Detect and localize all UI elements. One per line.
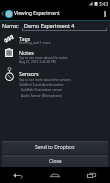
button[interactable]: More options xyxy=(99,7,110,20)
staticText: Viewing Experiment xyxy=(14,10,60,17)
staticText: Notes xyxy=(19,49,34,56)
staticText: 3:43 xyxy=(99,1,109,7)
button[interactable]: Back xyxy=(0,167,36,183)
staticText: Goldfish Orientation sensor xyxy=(0,88,83,92)
button[interactable]: Close xyxy=(2,155,108,168)
staticText: Aug 27, 2014 3:42:38 PM xyxy=(19,60,56,64)
staticText: Name: xyxy=(2,22,19,29)
staticText: Close xyxy=(49,158,62,165)
button[interactable]: Navigate up xyxy=(0,7,13,20)
button[interactable]: Notes xyxy=(0,48,110,65)
staticText: Audio Sensor [Microphone] xyxy=(0,94,83,98)
staticText: Goldfish 3-axis Accelerometer xyxy=(0,83,83,87)
button[interactable]: Home xyxy=(36,167,73,183)
button[interactable]: Recent apps xyxy=(73,167,110,183)
staticText: Send to Dropbox xyxy=(35,144,75,151)
button[interactable]: Send to Dropbox xyxy=(2,141,108,154)
staticText: Tags xyxy=(19,35,31,42)
button[interactable]: Sensors xyxy=(0,66,110,98)
staticText: Sensors xyxy=(19,70,39,77)
staticText: Tap to see more about the sensors xyxy=(19,78,71,82)
button[interactable]: Tags xyxy=(0,34,110,46)
staticText: Tap to see more about the notes xyxy=(19,56,68,60)
staticText: Running, and 1 more xyxy=(19,41,51,45)
button[interactable]: Demo Experiment 4 xyxy=(22,21,107,32)
staticText: Demo Experiment 4 xyxy=(24,22,75,29)
